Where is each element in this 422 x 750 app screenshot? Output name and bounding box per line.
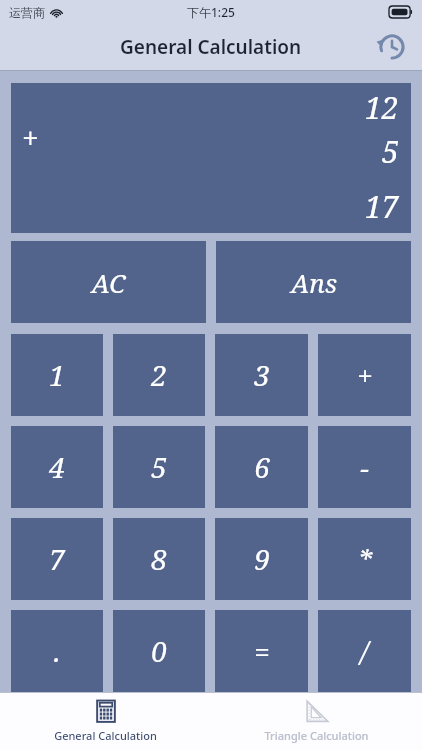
button[interactable]: 0: [113, 610, 205, 692]
button[interactable]: 8: [113, 518, 205, 600]
staticText: +: [357, 356, 373, 394]
staticText: 3: [254, 356, 270, 394]
staticText: 7: [49, 540, 65, 578]
staticText: /: [360, 632, 369, 670]
button[interactable]: 1: [11, 334, 103, 416]
staticText: 17: [365, 186, 399, 227]
button[interactable]: AC: [11, 241, 206, 323]
staticText: .: [53, 632, 61, 670]
button[interactable]: -: [318, 426, 411, 508]
staticText: 5: [382, 131, 399, 172]
button[interactable]: 4: [11, 426, 103, 508]
button[interactable]: 5: [113, 426, 205, 508]
staticText: 运营商: [9, 5, 45, 20]
staticText: 12: [365, 87, 399, 128]
button[interactable]: 7: [11, 518, 103, 600]
staticText: =: [254, 632, 270, 670]
staticText: 4: [49, 448, 65, 486]
button[interactable]: Triangle Calculation: [211, 693, 422, 750]
staticText: 9: [254, 540, 270, 578]
staticText: +: [22, 117, 39, 158]
button[interactable]: +: [318, 334, 411, 416]
staticText: 1: [49, 356, 65, 394]
staticText: 6: [254, 448, 270, 486]
staticText: General Calculation: [120, 34, 302, 60]
staticText: 8: [151, 540, 167, 578]
staticText: 0: [151, 632, 167, 670]
button[interactable]: 2: [113, 334, 205, 416]
button[interactable]: Ans: [216, 241, 411, 323]
button[interactable]: 3: [215, 334, 308, 416]
button[interactable]: General Calculation: [0, 693, 211, 750]
button[interactable]: /: [318, 610, 411, 692]
staticText: AC: [91, 265, 126, 300]
staticText: Ans: [291, 265, 337, 300]
staticText: 2: [151, 356, 167, 394]
button[interactable]: 6: [215, 426, 308, 508]
staticText: Triangle Calculation: [264, 728, 369, 743]
staticText: -: [360, 448, 369, 486]
button[interactable]: History: [372, 27, 412, 67]
button[interactable]: =: [215, 610, 308, 692]
staticText: *: [357, 540, 372, 578]
staticText: 5: [151, 448, 167, 486]
staticText: General Calculation: [54, 728, 157, 743]
button[interactable]: .: [11, 610, 103, 692]
button[interactable]: 9: [215, 518, 308, 600]
staticText: 下午1:25: [187, 4, 235, 20]
button[interactable]: *: [318, 518, 411, 600]
